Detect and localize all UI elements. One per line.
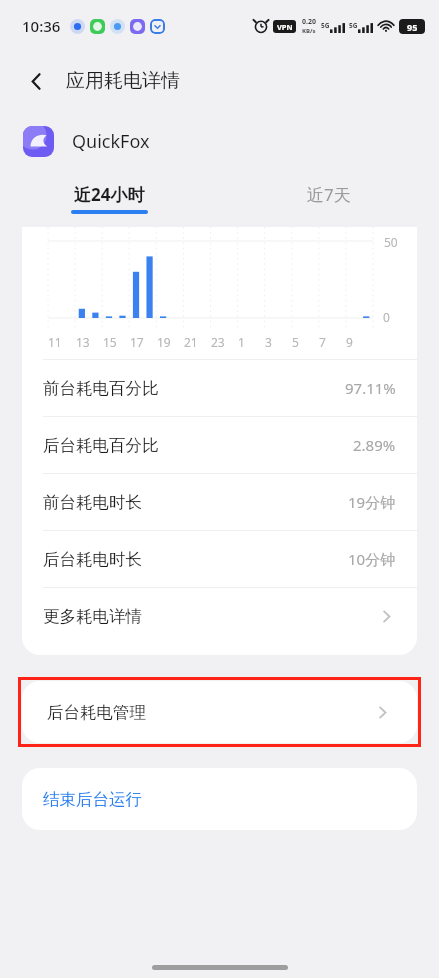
staticText: 5G xyxy=(321,21,330,30)
staticText: 50 xyxy=(384,234,398,250)
staticText: 5G xyxy=(349,21,358,30)
staticText: VPN xyxy=(277,22,293,32)
button[interactable]: 后台耗电百分比 xyxy=(22,417,417,473)
staticText: 17 xyxy=(130,334,144,350)
staticText: 1 xyxy=(238,334,245,350)
staticText: 9 xyxy=(346,334,353,350)
staticText: 13 xyxy=(76,334,90,350)
button[interactable]: 结束后台运行 xyxy=(22,768,417,830)
staticText: 近7天 xyxy=(307,183,351,206)
staticText: 11 xyxy=(48,334,62,350)
staticText: 19 xyxy=(157,334,171,350)
staticText: KB/s xyxy=(302,27,316,35)
staticText: 97.11% xyxy=(345,378,396,398)
staticText: 更多耗电详情 xyxy=(43,606,142,627)
button[interactable]: 后台耗电管理 xyxy=(22,681,417,743)
staticText: 21 xyxy=(184,334,198,350)
staticText: 后台耗电时长 xyxy=(43,549,142,570)
staticText: 2.89% xyxy=(353,435,396,455)
staticText: QuickFox xyxy=(72,129,150,154)
button[interactable]: 前台耗电百分比 xyxy=(22,360,417,416)
staticText: 0 xyxy=(383,309,390,325)
staticText: 10分钟 xyxy=(348,549,396,569)
staticText: 7 xyxy=(319,334,326,350)
staticText: 0.20 xyxy=(302,17,316,27)
staticText: 5 xyxy=(292,334,299,350)
staticText: 19分钟 xyxy=(348,492,396,512)
staticText: 10:36 xyxy=(22,16,61,36)
staticText: 近24小时 xyxy=(74,183,145,206)
staticText: 23 xyxy=(211,334,225,350)
button[interactable]: 后台耗电时长 xyxy=(22,531,417,587)
staticText: 15 xyxy=(103,334,117,350)
staticText: 前台耗电时长 xyxy=(43,492,142,513)
staticText: 3 xyxy=(265,334,272,350)
staticText: 应用耗电详情 xyxy=(66,69,180,93)
staticText: 后台耗电百分比 xyxy=(43,435,159,456)
staticText: 后台耗电管理 xyxy=(47,702,146,723)
button[interactable]: Back xyxy=(14,59,58,103)
button[interactable]: 近24小时 xyxy=(0,172,219,225)
button[interactable]: 前台耗电时长 xyxy=(22,474,417,530)
staticText: 前台耗电百分比 xyxy=(43,378,159,399)
button[interactable]: 近7天 xyxy=(219,172,439,225)
staticText: 95 xyxy=(407,21,418,33)
button[interactable]: 更多耗电详情 xyxy=(22,588,417,644)
staticText: 结束后台运行 xyxy=(43,789,142,810)
